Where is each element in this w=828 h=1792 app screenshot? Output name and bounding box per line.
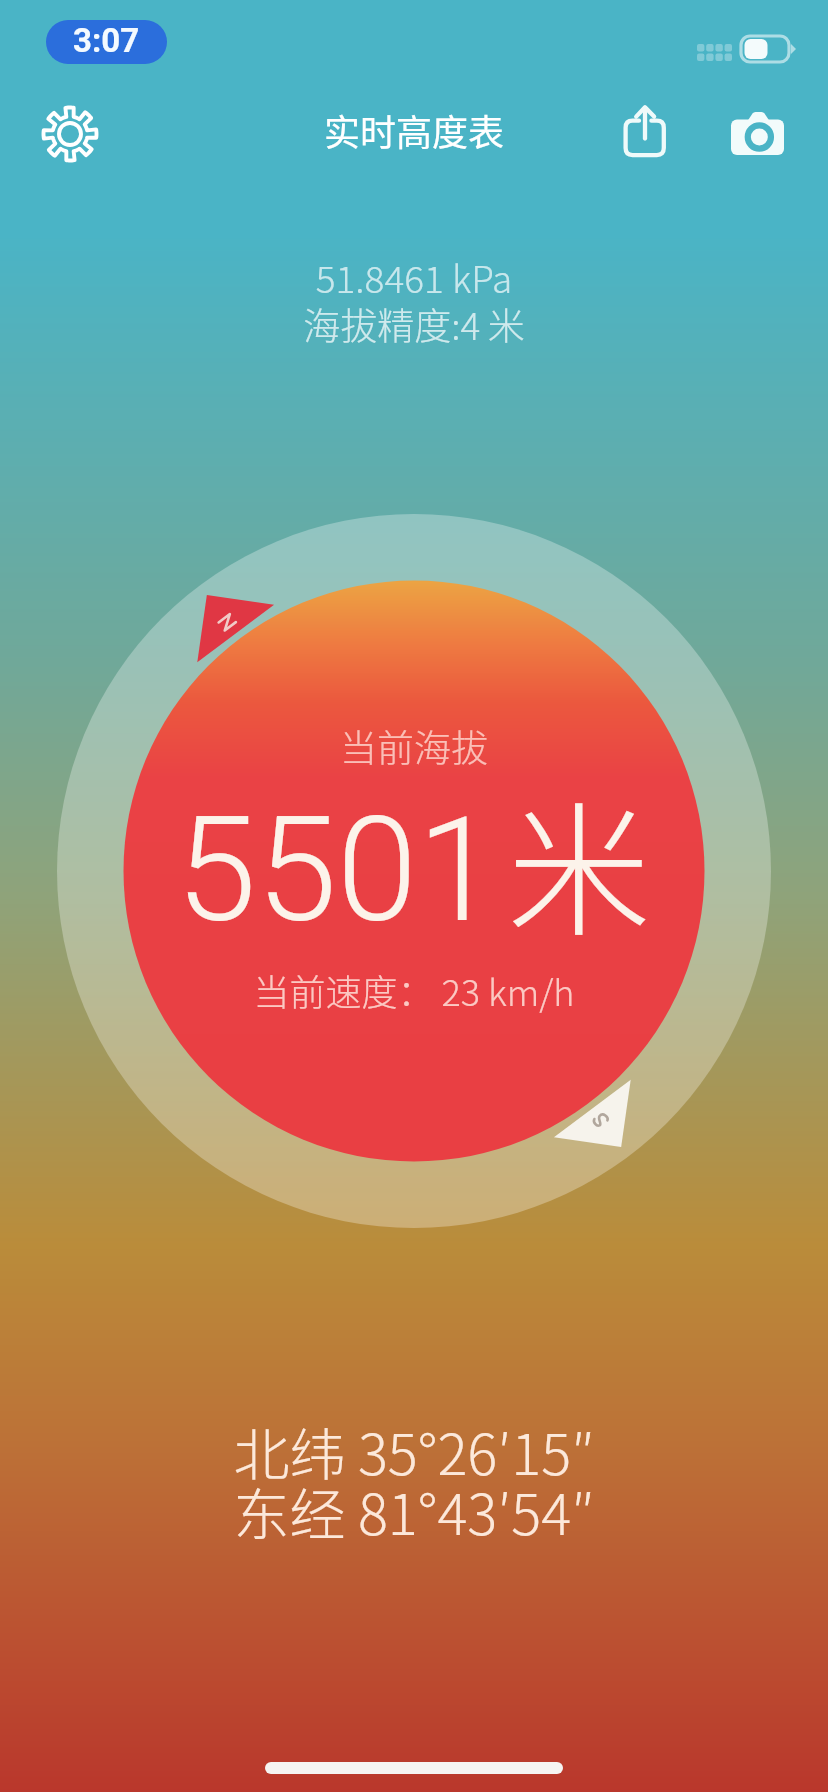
staticText: 5501 [176,785,498,955]
staticText: 51.8461 kPa [0,250,828,304]
button[interactable]: Camera [714,90,802,178]
staticText: 当前速度： 23 km/h [0,964,828,1016]
button[interactable]: Settings [26,90,114,178]
staticText: 3:07 [73,21,140,60]
staticText: 海拔精度:4 米 [0,297,828,351]
staticText: 实时高度表 [0,104,828,156]
staticText: 米 [507,757,652,966]
staticText: 东经 81°43′54″ [0,1470,828,1551]
staticText: 北纬 35°26′15″ [0,1410,828,1491]
button[interactable]: Share [602,87,690,175]
staticText: 当前海拔 [0,719,828,773]
